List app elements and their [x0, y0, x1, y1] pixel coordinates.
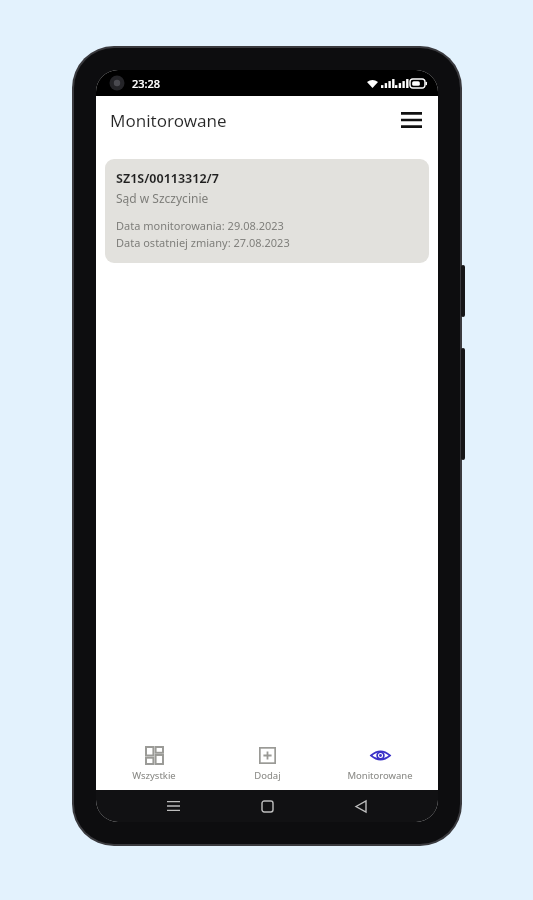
staticText: Sąd w Szczycinie	[116, 190, 209, 206]
staticText: Monitorowane	[110, 109, 227, 132]
button[interactable]: Menu	[394, 103, 428, 137]
button[interactable]: Back	[344, 790, 378, 822]
staticText: Data monitorowania: 29.08.2023	[116, 218, 284, 233]
staticText: Dodaj	[254, 769, 281, 782]
staticText: Data ostatniej zmiany: 27.08.2023	[116, 235, 290, 250]
button[interactable]: Wszystkie	[99, 741, 209, 787]
button[interactable]: Monitorowane	[325, 741, 435, 787]
button[interactable]: Recents	[156, 790, 190, 822]
staticText: SZ1S/00113312/7	[116, 170, 219, 187]
staticText: Wszystkie	[132, 769, 176, 782]
button[interactable]: Home	[250, 790, 284, 822]
button[interactable]: Dodaj	[212, 741, 322, 787]
staticText: 23:28	[132, 76, 161, 91]
staticText: Monitorowane	[347, 769, 413, 782]
button[interactable]: SZ1S/00113312/7	[105, 159, 429, 263]
